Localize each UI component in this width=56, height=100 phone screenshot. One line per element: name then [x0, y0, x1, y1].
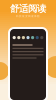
- staticText: 舒适阅读: [10, 3, 46, 14]
- staticText: 科技改变阅读体验: [16, 14, 40, 18]
